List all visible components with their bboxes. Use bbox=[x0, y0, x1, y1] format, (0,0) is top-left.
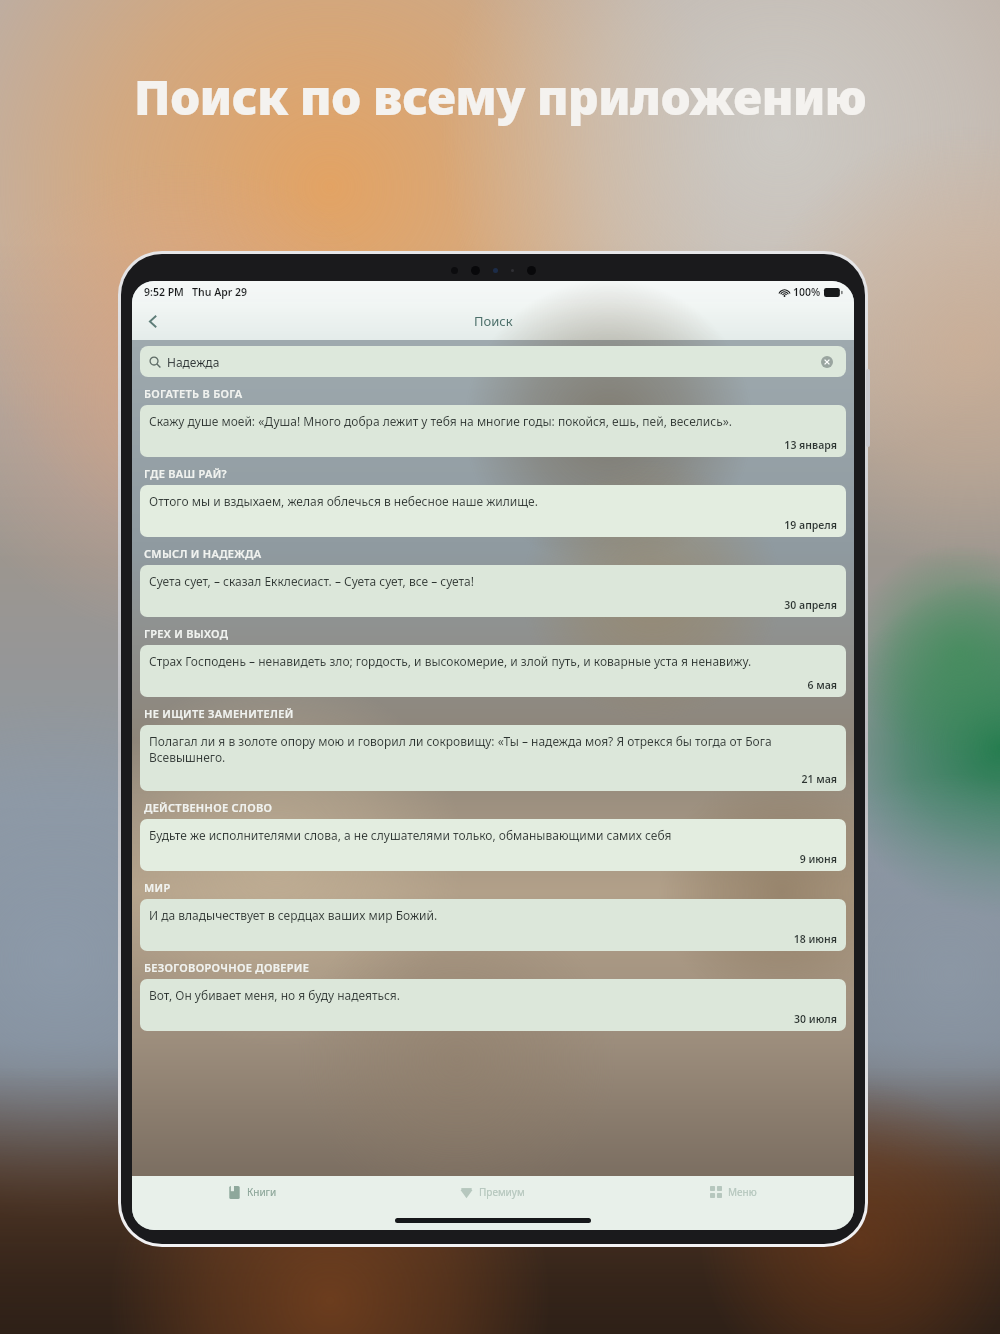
staticText: 6 мая bbox=[149, 678, 837, 692]
staticText: ДЕЙСТВЕННОЕ СЛОВО bbox=[144, 800, 273, 815]
button[interactable]: Вот, Он убивает меня, но я буду надеятьс… bbox=[140, 979, 846, 1031]
button[interactable]: Книги bbox=[132, 1176, 372, 1208]
staticText: Меню bbox=[728, 1185, 757, 1199]
staticText: Страх Господень – ненавидеть зло; гордос… bbox=[149, 653, 752, 669]
staticText: Оттого мы и вздыхаем, желая облечься в н… bbox=[149, 493, 538, 509]
staticText: Премиум bbox=[479, 1185, 525, 1199]
staticText: 21 мая bbox=[149, 772, 837, 786]
staticText: ГДЕ ВАШ РАЙ? bbox=[144, 466, 227, 481]
button[interactable]: Премиум bbox=[372, 1176, 613, 1208]
staticText: ГРЕХ И ВЫХОД bbox=[144, 626, 229, 641]
button[interactable]: Скажу душе моей: «Душа! Много добра лежи… bbox=[140, 405, 846, 457]
staticText: 13 января bbox=[149, 438, 837, 452]
button[interactable]: Clear bbox=[817, 352, 837, 372]
button[interactable]: Полагал ли я в золоте опору мою и говори… bbox=[140, 725, 846, 791]
button[interactable]: Страх Господень – ненавидеть зло; гордос… bbox=[140, 645, 846, 697]
staticText: 9:52 PM Thu Apr 29 bbox=[144, 285, 248, 299]
staticText: 9 июня bbox=[149, 852, 837, 866]
staticText: Поиск по всему приложению bbox=[134, 64, 867, 129]
staticText: НЕ ИЩИТЕ ЗАМЕНИТЕЛЕЙ bbox=[144, 706, 294, 721]
staticText: 100% bbox=[793, 285, 821, 299]
staticText: Скажу душе моей: «Душа! Много добра лежи… bbox=[149, 413, 733, 429]
staticText: Поиск bbox=[474, 312, 513, 330]
staticText: И да владычествует в сердцах ваших мир Б… bbox=[149, 907, 438, 923]
staticText: 30 июля bbox=[149, 1012, 837, 1026]
staticText: СМЫСЛ И НАДЕЖДА bbox=[144, 546, 262, 561]
staticText: Книги bbox=[247, 1185, 277, 1199]
staticText: 18 июня bbox=[149, 932, 837, 946]
button[interactable]: Надежда bbox=[140, 346, 846, 377]
staticText: БОГАТЕТЬ В БОГА bbox=[144, 386, 243, 401]
button[interactable]: И да владычествует в сердцах ваших мир Б… bbox=[140, 899, 846, 951]
staticText: 19 апреля bbox=[149, 518, 837, 532]
button[interactable]: Будьте же исполнителями слова, а не слуш… bbox=[140, 819, 846, 871]
button[interactable]: Back bbox=[136, 304, 170, 338]
button[interactable]: Оттого мы и вздыхаем, желая облечься в н… bbox=[140, 485, 846, 537]
staticText: Будьте же исполнителями слова, а не слуш… bbox=[149, 827, 672, 843]
staticText: Полагал ли я в золоте опору мою и говори… bbox=[149, 733, 837, 766]
staticText: Вот, Он убивает меня, но я буду надеятьс… bbox=[149, 987, 400, 1003]
staticText: МИР bbox=[144, 880, 171, 895]
button[interactable]: Суета сует, – сказал Екклесиаст. – Суета… bbox=[140, 565, 846, 617]
staticText: БЕЗОГОВОРОЧНОЕ ДОВЕРИЕ bbox=[144, 960, 310, 975]
button[interactable]: Меню bbox=[613, 1176, 854, 1208]
staticText: Суета сует, – сказал Екклесиаст. – Суета… bbox=[149, 573, 474, 589]
staticText: 30 апреля bbox=[149, 598, 837, 612]
staticText: Надежда bbox=[167, 354, 220, 370]
